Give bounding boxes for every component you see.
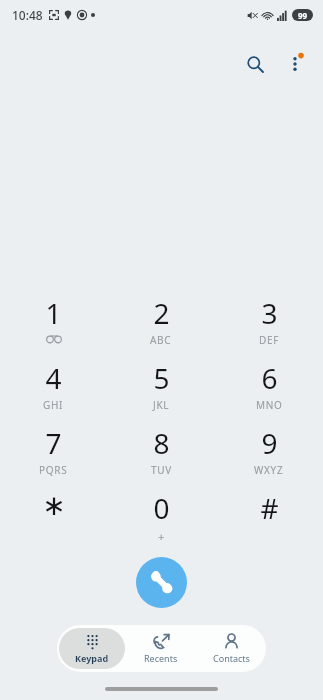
staticText: TUV xyxy=(151,463,172,477)
button[interactable]: # xyxy=(215,483,323,548)
button[interactable]: 4 xyxy=(0,353,107,418)
button[interactable]: Contacts xyxy=(196,625,266,672)
button[interactable]: Keypad xyxy=(57,625,126,672)
staticText: Contacts xyxy=(213,652,250,664)
staticText: ∗ xyxy=(42,489,66,522)
button[interactable]: 1 xyxy=(0,288,107,353)
button[interactable]: 5 xyxy=(107,353,215,418)
button[interactable]: More options xyxy=(275,44,315,84)
button[interactable]: 8 xyxy=(107,418,215,483)
button[interactable]: 9 xyxy=(215,418,323,483)
staticText: Recents xyxy=(144,652,178,664)
staticText: 2 xyxy=(153,294,170,332)
staticText: 4 xyxy=(45,359,62,397)
staticText: WXYZ xyxy=(254,463,284,477)
button[interactable]: 0 xyxy=(107,483,215,548)
staticText: 10:48 xyxy=(12,7,43,23)
button[interactable]: 7 xyxy=(0,418,107,483)
staticText: DEF xyxy=(259,333,280,347)
staticText: JKL xyxy=(153,398,170,412)
button[interactable]: 6 xyxy=(215,353,323,418)
staticText: GHI xyxy=(43,398,64,412)
staticText: 6 xyxy=(261,359,278,397)
staticText: 5 xyxy=(153,359,170,397)
staticText: 0 xyxy=(153,489,170,527)
button[interactable]: ∗ xyxy=(0,483,107,548)
button[interactable]: 3 xyxy=(215,288,323,353)
staticText: MNO xyxy=(256,398,283,412)
staticText: 1 xyxy=(45,294,62,332)
button[interactable]: Call xyxy=(136,557,187,608)
staticText: 9 xyxy=(261,424,278,462)
staticText: ABC xyxy=(150,333,172,347)
staticText: + xyxy=(158,529,165,544)
button[interactable]: Search xyxy=(235,44,275,84)
staticText: 7 xyxy=(45,424,62,462)
staticText: 99 xyxy=(298,10,308,21)
staticText: # xyxy=(260,489,279,527)
staticText: Keypad xyxy=(75,652,109,664)
staticText: 3 xyxy=(261,294,278,332)
button[interactable]: 2 xyxy=(107,288,215,353)
staticText: 8 xyxy=(153,424,170,462)
button[interactable]: Recents xyxy=(126,625,196,672)
staticText: PQRS xyxy=(39,463,68,477)
